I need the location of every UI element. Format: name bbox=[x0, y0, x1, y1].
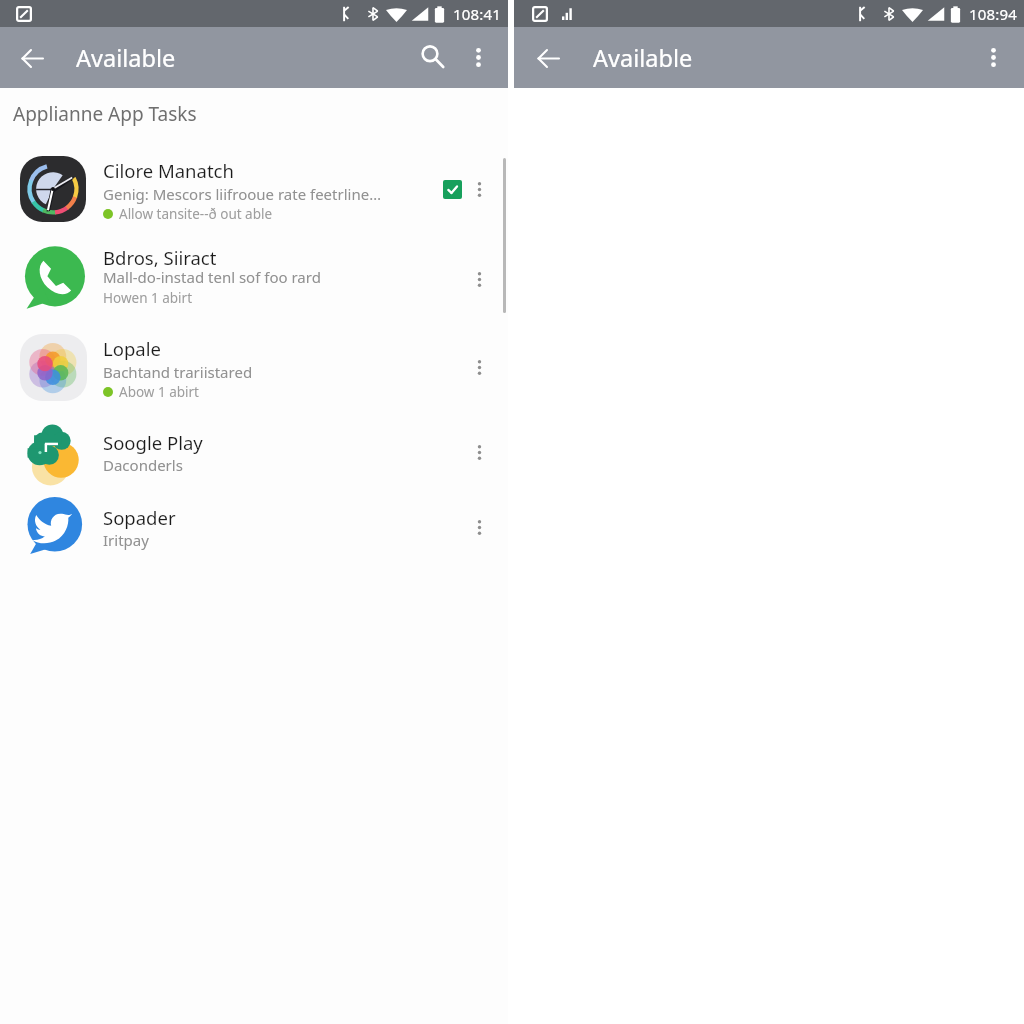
button[interactable]: Sopader bbox=[0, 483, 508, 571]
staticText: 108:41 bbox=[453, 4, 502, 24]
staticText: Howen 1 abirt bbox=[103, 289, 193, 307]
staticText: Mall-do-instad tenl sof foo rard bbox=[103, 267, 321, 287]
staticText: Bachtand trariistared bbox=[103, 362, 253, 382]
staticText: Allow tansite--ð out able bbox=[119, 205, 273, 223]
button[interactable]: More options bbox=[462, 510, 496, 544]
staticText: 108:94 bbox=[969, 4, 1018, 24]
staticText: Genig: Mescors liifrooue rate feetrline… bbox=[103, 184, 382, 204]
button[interactable]: More options bbox=[462, 435, 496, 469]
button[interactable]: Enabled bbox=[437, 174, 467, 204]
button[interactable]: More options bbox=[457, 36, 499, 78]
button[interactable]: More options bbox=[462, 350, 496, 384]
button[interactable]: Back bbox=[15, 41, 49, 75]
button[interactable]: Back bbox=[531, 41, 565, 75]
button[interactable]: More options bbox=[972, 36, 1014, 78]
staticText: Applianne App Tasks bbox=[13, 101, 197, 127]
button[interactable]: Search bbox=[411, 35, 453, 77]
staticText: Sopader bbox=[103, 505, 176, 530]
staticText: Daconderls bbox=[103, 455, 183, 475]
button[interactable]: More options bbox=[462, 262, 496, 296]
button[interactable]: Lopale bbox=[0, 323, 508, 411]
staticText: Bdros, Siiract bbox=[103, 245, 217, 270]
staticText: Soogle Play bbox=[103, 430, 203, 455]
staticText: Cilore Manatch bbox=[103, 158, 234, 183]
staticText: Lopale bbox=[103, 336, 161, 361]
staticText: Iritpay bbox=[103, 530, 149, 550]
button[interactable]: Soogle Play bbox=[0, 408, 508, 496]
button[interactable]: Cilore Manatch bbox=[0, 145, 508, 233]
button[interactable]: More options bbox=[462, 172, 496, 206]
staticText: Abow 1 abirt bbox=[119, 383, 199, 401]
staticText: Available bbox=[593, 42, 693, 74]
button[interactable]: Bdros, Siiract bbox=[0, 235, 508, 323]
staticText: Available bbox=[76, 42, 176, 74]
